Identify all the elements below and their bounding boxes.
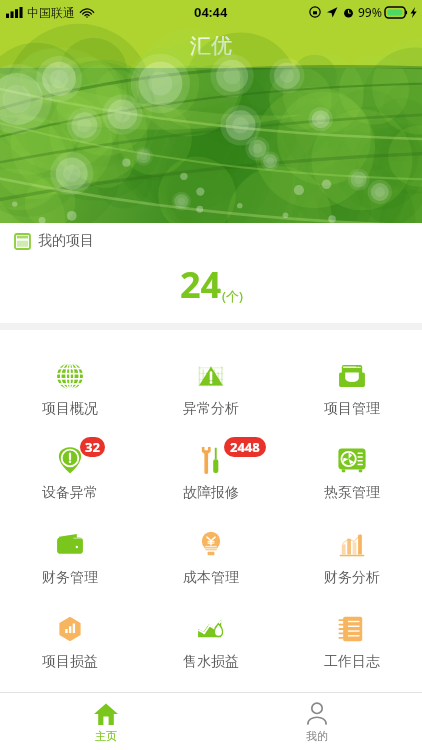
staticText: 异常分析	[183, 400, 239, 418]
button[interactable]: 成本管理	[140, 524, 281, 591]
staticText: 中国联通	[27, 5, 75, 20]
staticText: (个)	[222, 287, 243, 305]
button[interactable]: 项目损益	[0, 608, 140, 675]
staticText: 32	[85, 438, 100, 456]
staticText: 99%	[358, 4, 382, 20]
staticText: 我的	[306, 729, 328, 743]
staticText: 工作日志	[324, 653, 380, 671]
staticText: 04:44	[194, 3, 228, 21]
button[interactable]: 32	[0, 439, 140, 506]
button[interactable]: 主页	[0, 693, 211, 750]
staticText: 24	[180, 260, 222, 309]
staticText: 2448	[230, 438, 260, 456]
staticText: 售水损益	[183, 653, 239, 671]
button[interactable]: 项目管理	[281, 355, 422, 422]
staticText: 故障报修	[183, 484, 239, 502]
staticText: 项目概况	[42, 400, 98, 418]
button[interactable]: 工作日志	[281, 608, 422, 675]
button[interactable]: 异常分析	[140, 355, 281, 422]
button[interactable]: 财务管理	[0, 524, 140, 591]
staticText: 我的项目	[38, 232, 94, 250]
staticText: 设备异常	[42, 484, 98, 502]
button[interactable]: 我的	[211, 693, 422, 750]
staticText: 项目损益	[42, 653, 98, 671]
staticText: 财务管理	[42, 569, 98, 587]
staticText: 成本管理	[183, 569, 239, 587]
staticText: 汇优	[190, 33, 232, 59]
button[interactable]: 财务分析	[281, 524, 422, 591]
button[interactable]: 热泵管理	[281, 439, 422, 506]
button[interactable]: 2448	[140, 439, 281, 506]
staticText: 主页	[95, 729, 117, 743]
staticText: 项目管理	[324, 400, 380, 418]
staticText: 热泵管理	[324, 484, 380, 502]
staticText: 财务分析	[324, 569, 380, 587]
button[interactable]: 售水损益	[140, 608, 281, 675]
button[interactable]: 项目概况	[0, 355, 140, 422]
